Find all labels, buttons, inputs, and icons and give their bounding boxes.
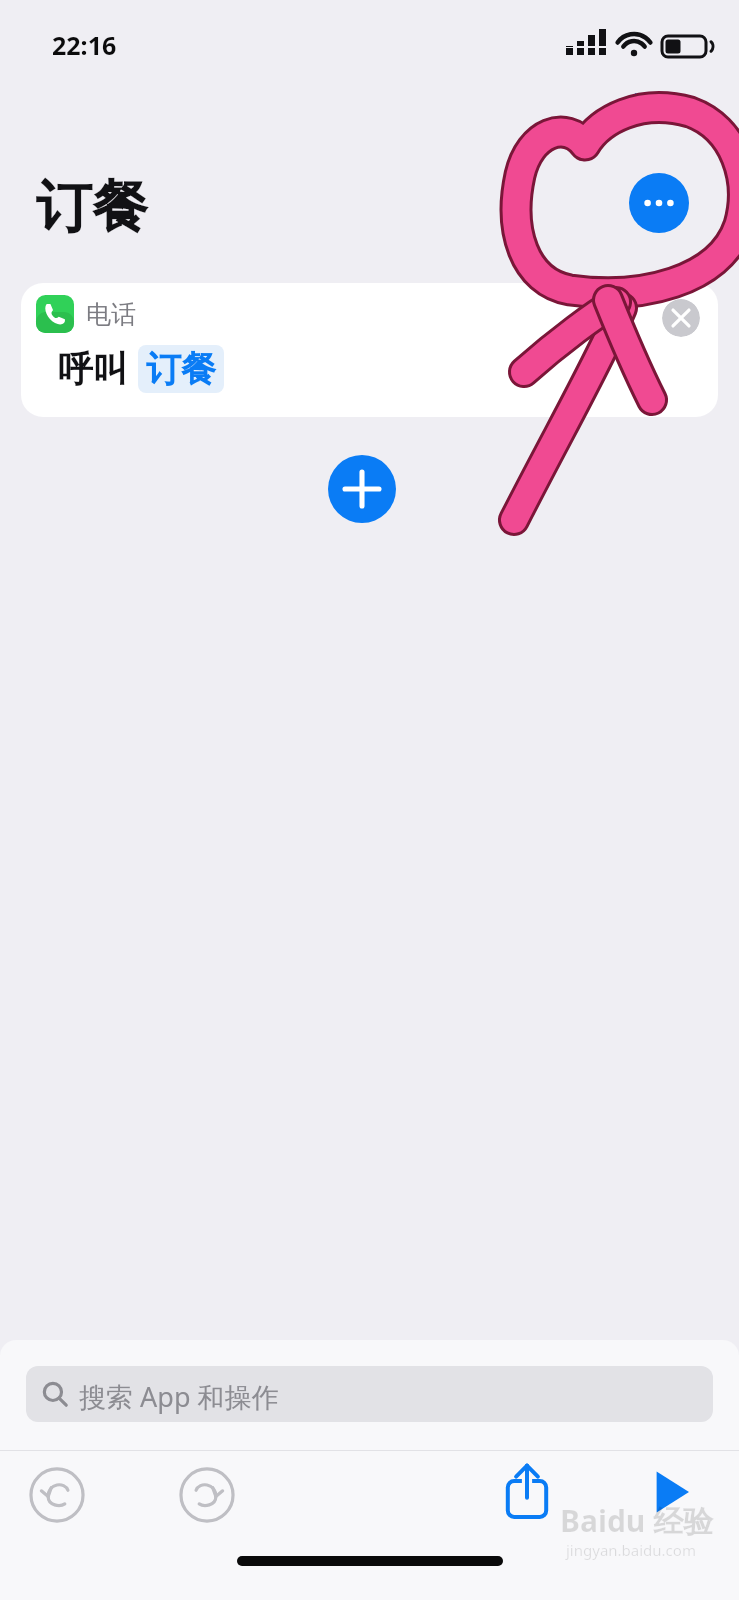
staticText: 22:16: [52, 28, 117, 62]
staticText: 呼叫: [58, 347, 128, 391]
button[interactable]: 电话: [21, 283, 718, 417]
button[interactable]: Redo: [176, 1464, 238, 1526]
button[interactable]: More options: [629, 173, 689, 233]
button[interactable]: Undo: [26, 1464, 88, 1526]
button[interactable]: Add action: [328, 455, 396, 523]
button[interactable]: Share: [495, 1458, 559, 1522]
staticText: 订餐: [146, 347, 216, 391]
staticText: 电话: [86, 299, 136, 330]
staticText: 搜索 App 和操作: [79, 1378, 279, 1415]
button[interactable]: Remove action: [662, 299, 700, 337]
staticText: jingyan.baidu.com: [566, 1540, 696, 1560]
staticText: 订餐: [36, 172, 148, 243]
button[interactable]: 完成: [620, 88, 680, 125]
button[interactable]: 搜索 App 和操作: [26, 1366, 713, 1422]
staticText: 完成: [624, 90, 676, 123]
button[interactable]: Run shortcut: [641, 1462, 701, 1522]
staticText: Baidu 经验: [560, 1500, 714, 1541]
button[interactable]: 订餐: [138, 345, 224, 393]
